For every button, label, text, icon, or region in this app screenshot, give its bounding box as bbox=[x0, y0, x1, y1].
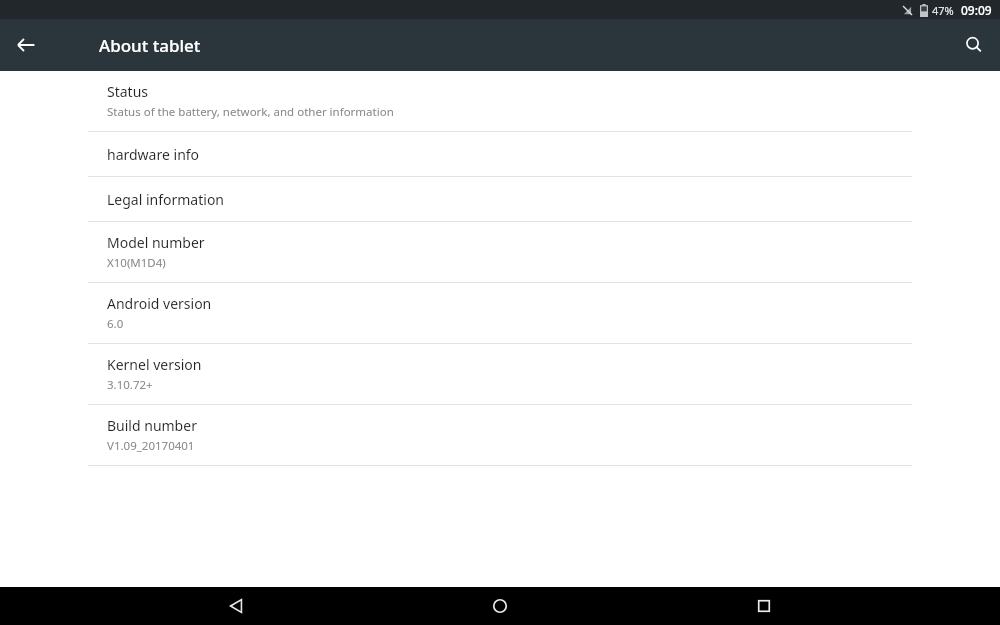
button[interactable]: Kernel version bbox=[0, 344, 1000, 404]
button[interactable]: Model number bbox=[0, 222, 1000, 282]
staticText: About tablet bbox=[99, 34, 201, 57]
staticText: X10(M1D4) bbox=[107, 255, 166, 271]
staticText: Kernel version bbox=[107, 355, 202, 374]
button[interactable]: Status bbox=[0, 71, 1000, 131]
button[interactable]: hardware info bbox=[0, 132, 1000, 176]
button[interactable]: Build number bbox=[0, 405, 1000, 465]
staticText: V1.09_20170401 bbox=[107, 438, 195, 454]
button[interactable]: Search bbox=[954, 25, 994, 65]
staticText: Android version bbox=[107, 294, 212, 313]
button[interactable]: Legal information bbox=[0, 177, 1000, 221]
button[interactable]: Android version bbox=[0, 283, 1000, 343]
staticText: Model number bbox=[107, 233, 205, 252]
staticText: Legal information bbox=[107, 190, 225, 209]
staticText: hardware info bbox=[107, 145, 200, 164]
staticText: Build number bbox=[107, 416, 197, 435]
button[interactable]: Recent apps bbox=[736, 587, 792, 625]
staticText: 47% bbox=[932, 3, 954, 18]
staticText: 09:09 bbox=[961, 2, 992, 18]
staticText: Status bbox=[107, 82, 149, 101]
staticText: Status of the battery, network, and othe… bbox=[107, 104, 394, 120]
staticText: 3.10.72+ bbox=[107, 377, 153, 393]
button[interactable]: Back bbox=[208, 587, 264, 625]
button[interactable]: Home bbox=[472, 587, 528, 625]
button[interactable]: Back bbox=[6, 25, 46, 65]
staticText: 6.0 bbox=[107, 316, 124, 332]
